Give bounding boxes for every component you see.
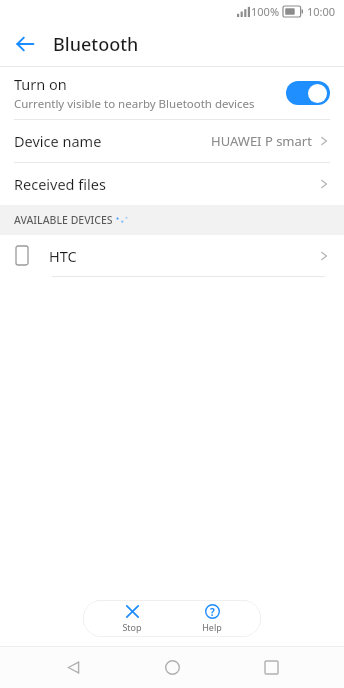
staticText: HUAWEI P smart [211, 132, 312, 150]
staticText: Help [202, 621, 222, 633]
button[interactable]: Turn on [0, 67, 344, 119]
staticText: Device name [14, 131, 102, 151]
staticText: ? [210, 605, 215, 619]
staticText: Bluetooth [53, 32, 139, 57]
staticText: Stop [122, 621, 142, 633]
button[interactable]: Device name [0, 120, 344, 162]
button[interactable]: Home [146, 647, 198, 688]
button[interactable]: Stop [102, 602, 162, 635]
staticText: AVAILABLE DEVICES [14, 213, 113, 227]
button[interactable]: Back [47, 647, 99, 688]
button[interactable]: Back [6, 25, 44, 63]
staticText: Received files [14, 174, 106, 194]
staticText: HTC [49, 246, 77, 266]
staticText: Currently visible to nearby Bluetooth de… [14, 96, 255, 112]
button[interactable]: ? [182, 602, 242, 635]
button[interactable]: Bluetooth on [286, 81, 330, 105]
button[interactable]: Recent apps [245, 647, 297, 688]
button[interactable]: HTC [0, 235, 344, 276]
staticText: 10:00 [307, 4, 336, 19]
staticText: 100% [251, 4, 280, 19]
staticText: Turn on [14, 74, 67, 94]
button[interactable]: Received files [0, 163, 344, 205]
